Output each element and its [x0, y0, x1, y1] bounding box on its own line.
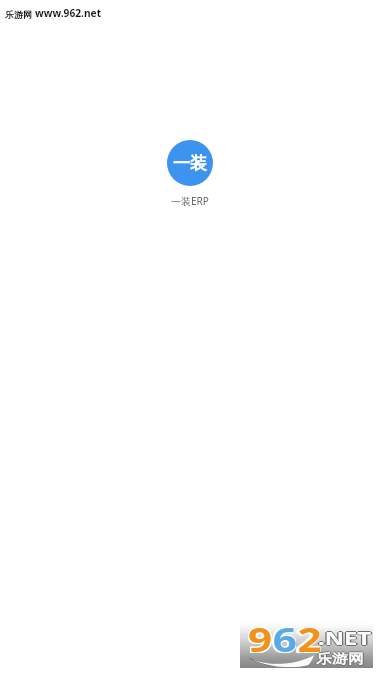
staticText: .NET — [318, 626, 371, 649]
staticText: www.962.net — [35, 6, 102, 20]
staticText: .NET — [319, 627, 373, 650]
button[interactable]: 962.NET 乐游网 — [240, 622, 373, 668]
staticText: 962 — [249, 617, 322, 663]
staticText: 乐游网 — [316, 649, 364, 665]
staticText: 乐游网 — [316, 651, 364, 667]
staticText: .NET — [318, 628, 371, 651]
staticText: 962 — [247, 617, 320, 663]
staticText: 6 — [273, 616, 298, 662]
button[interactable]: 一装ERP logo — [167, 140, 213, 186]
staticText: 962 — [249, 615, 322, 661]
staticText: 乐游网 — [316, 650, 364, 666]
staticText: 962 — [247, 616, 320, 662]
staticText: .NET — [318, 627, 371, 650]
staticText: 乐游网 — [5, 9, 32, 20]
staticText: 一装ERP — [171, 194, 209, 208]
staticText: 962 — [247, 615, 320, 661]
staticText: 乐游网 — [315, 650, 362, 666]
staticText: .NET — [317, 627, 370, 650]
staticText: 乐游网 — [317, 650, 365, 666]
staticText: 962 — [248, 615, 321, 661]
staticText: 962 — [249, 616, 322, 662]
staticText: 9 — [248, 616, 273, 662]
staticText: 962 — [248, 617, 321, 663]
staticText: 一装 — [173, 153, 207, 174]
staticText: 2 — [298, 616, 322, 662]
